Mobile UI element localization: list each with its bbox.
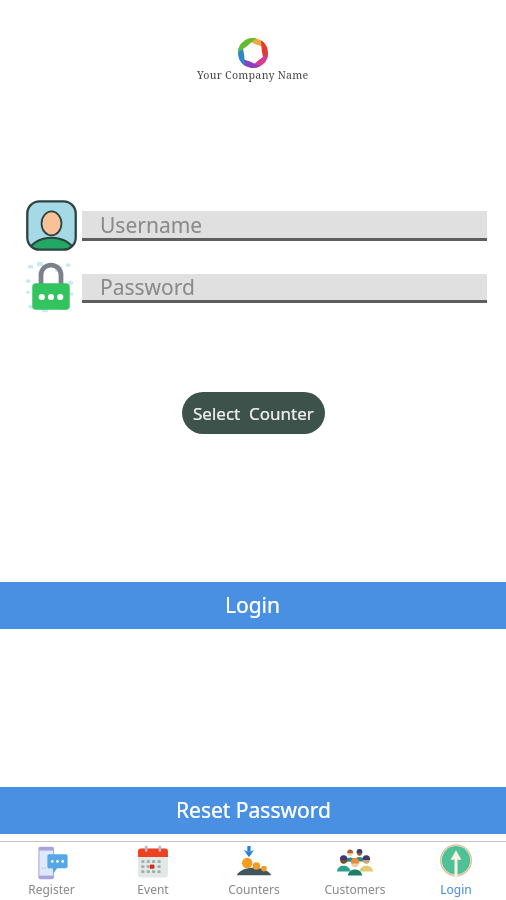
button[interactable]: Customers: [304, 842, 405, 900]
button[interactable]: Select Counter: [182, 392, 325, 434]
staticText: Select Counter: [193, 402, 314, 425]
staticText: Customers: [324, 881, 386, 897]
button[interactable]: Login: [0, 582, 506, 629]
other: Register: [33, 845, 69, 881]
button[interactable]: Password: [82, 274, 487, 303]
staticText: Login: [440, 881, 472, 897]
button[interactable]: Login: [405, 842, 506, 900]
button[interactable]: Username: [82, 211, 487, 241]
staticText: Reset Password: [176, 796, 331, 825]
staticText: Register: [28, 881, 75, 897]
button[interactable]: Register: [0, 842, 102, 900]
staticText: Login: [225, 591, 281, 620]
other: Event: [135, 845, 171, 881]
other: Counters: [236, 845, 272, 881]
other: Customers: [337, 845, 373, 881]
other: Login: [438, 845, 474, 881]
staticText: Username: [100, 211, 203, 240]
button[interactable]: Reset Password: [0, 787, 506, 834]
button[interactable]: Event: [102, 842, 203, 900]
staticText: Password: [100, 273, 195, 302]
staticText: Counters: [228, 881, 280, 897]
staticText: Your Company Name: [197, 68, 309, 82]
button[interactable]: Counters: [203, 842, 304, 900]
staticText: Event: [137, 881, 169, 897]
